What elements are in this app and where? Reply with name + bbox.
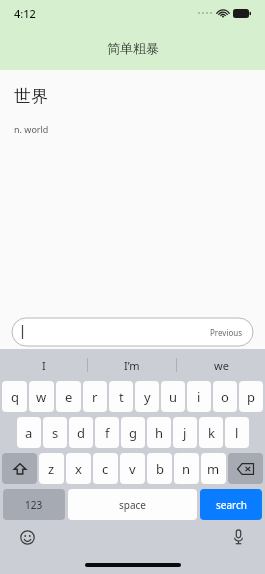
button[interactable]: 123 <box>3 489 65 520</box>
button[interactable]: o <box>213 381 237 412</box>
button[interactable]: v <box>120 453 145 484</box>
staticText: m <box>207 460 220 478</box>
button[interactable]: c <box>93 453 118 484</box>
button[interactable]: j <box>173 417 197 448</box>
staticText: n. world <box>14 123 49 135</box>
staticText: x <box>75 460 82 478</box>
button[interactable]: a <box>17 417 41 448</box>
staticText: k <box>208 424 215 442</box>
button[interactable]: space <box>68 489 197 520</box>
button[interactable]: p <box>239 381 263 412</box>
staticText: j <box>183 424 187 442</box>
staticText: g <box>129 424 137 442</box>
button[interactable]: b <box>147 453 172 484</box>
button[interactable]: u <box>161 381 185 412</box>
button[interactable]: I’m <box>88 349 176 381</box>
staticText: l <box>235 424 239 442</box>
staticText: w <box>36 388 47 406</box>
button[interactable]: i <box>187 381 211 412</box>
button[interactable]: Shift <box>2 453 37 484</box>
staticText: r <box>92 388 98 406</box>
button[interactable]: Previous <box>12 318 253 346</box>
button[interactable]: k <box>199 417 223 448</box>
button[interactable]: e <box>56 381 81 412</box>
staticText: p <box>247 388 255 406</box>
staticText: 123 <box>25 498 43 512</box>
staticText: space <box>119 498 146 512</box>
staticText: h <box>155 424 164 442</box>
button[interactable]: q <box>2 381 27 412</box>
button[interactable]: I <box>0 349 87 381</box>
staticText: I’m <box>124 358 140 373</box>
staticText: I <box>42 358 46 373</box>
button[interactable]: t <box>109 381 133 412</box>
button[interactable]: s <box>43 417 67 448</box>
button[interactable]: l <box>225 417 249 448</box>
staticText: b <box>156 460 164 478</box>
staticText: t <box>119 388 124 406</box>
staticText: q <box>11 388 19 406</box>
staticText: 简单粗暴 <box>107 40 159 56</box>
staticText: z <box>48 460 55 478</box>
staticText: n <box>182 460 191 478</box>
staticText: we <box>214 358 229 373</box>
button[interactable]: h <box>147 417 171 448</box>
button[interactable]: n <box>174 453 199 484</box>
button[interactable]: m <box>201 453 226 484</box>
staticText: o <box>221 388 229 406</box>
staticText: a <box>25 424 33 442</box>
staticText: search <box>216 498 247 512</box>
button[interactable]: x <box>66 453 91 484</box>
staticText: e <box>65 388 73 406</box>
button[interactable]: w <box>29 381 54 412</box>
button[interactable]: f <box>95 417 119 448</box>
button[interactable]: Backspace <box>228 453 263 484</box>
staticText: 4:12 <box>14 6 36 21</box>
staticText: 世界 <box>14 86 48 107</box>
button[interactable]: z <box>39 453 64 484</box>
staticText: d <box>77 424 85 442</box>
button[interactable]: we <box>177 349 265 381</box>
staticText: y <box>144 388 151 406</box>
button[interactable]: d <box>69 417 93 448</box>
button[interactable]: g <box>121 417 145 448</box>
button[interactable]: search <box>200 489 262 520</box>
staticText: c <box>102 460 109 478</box>
staticText: f <box>105 424 110 442</box>
staticText: s <box>52 424 59 442</box>
button[interactable]: y <box>135 381 159 412</box>
staticText: Previous <box>210 327 243 338</box>
button[interactable]: Emoji <box>16 526 38 548</box>
staticText: u <box>169 388 178 406</box>
button[interactable]: Voice input <box>227 526 249 548</box>
staticText: i <box>197 388 201 406</box>
staticText: v <box>129 460 136 478</box>
button[interactable]: r <box>83 381 107 412</box>
